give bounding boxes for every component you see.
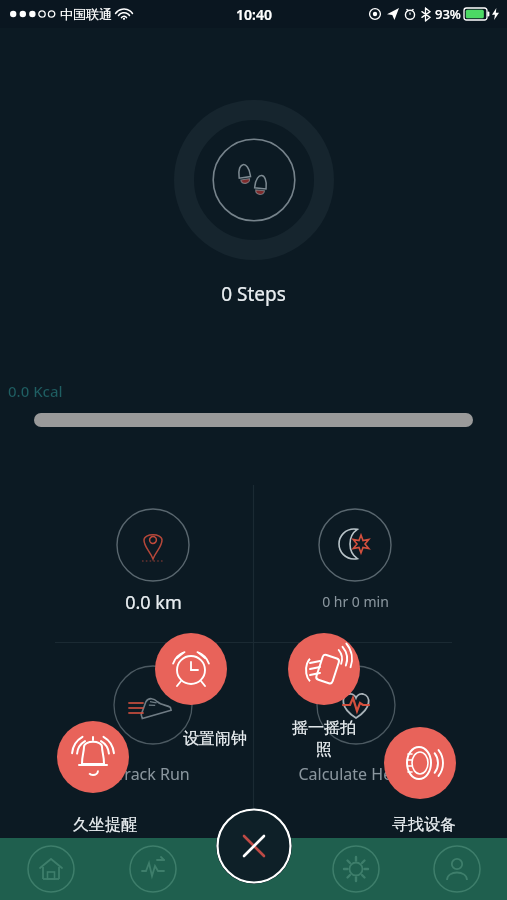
- staticText: 0 Steps: [0, 281, 507, 307]
- staticText: 寻找设备: [372, 815, 476, 835]
- button[interactable]: Sedentary reminder: [57, 721, 129, 793]
- staticText: Calculate Heart: [281, 763, 431, 785]
- button[interactable]: 0 hr 0 min: [307, 508, 403, 611]
- button[interactable]: Activity: [102, 838, 204, 900]
- button[interactable]: Find device: [384, 727, 456, 799]
- button[interactable]: Steps: [174, 100, 334, 260]
- button[interactable]: Home: [0, 838, 102, 900]
- staticText: 0.0 Kcal: [8, 381, 63, 401]
- button[interactable]: 0.0 km: [105, 508, 201, 615]
- button[interactable]: [34, 413, 473, 427]
- staticText: 久坐提醒: [53, 815, 157, 835]
- staticText: 摇一摇拍 照: [272, 718, 376, 760]
- staticText: 93%: [435, 5, 461, 23]
- staticText: 设置闹钟: [163, 729, 267, 749]
- staticText: 0.0 km: [125, 590, 182, 615]
- staticText: 0 hr 0 min: [322, 592, 389, 611]
- button[interactable]: Shake to photo: [288, 633, 360, 705]
- button[interactable]: Set alarm: [155, 633, 227, 705]
- staticText: 中国联通: [60, 6, 112, 22]
- button[interactable]: Settings: [305, 838, 406, 900]
- button[interactable]: Profile: [406, 838, 507, 900]
- staticText: Track Run: [93, 763, 213, 785]
- staticText: 10:40: [236, 5, 272, 24]
- button[interactable]: Close: [216, 808, 292, 884]
